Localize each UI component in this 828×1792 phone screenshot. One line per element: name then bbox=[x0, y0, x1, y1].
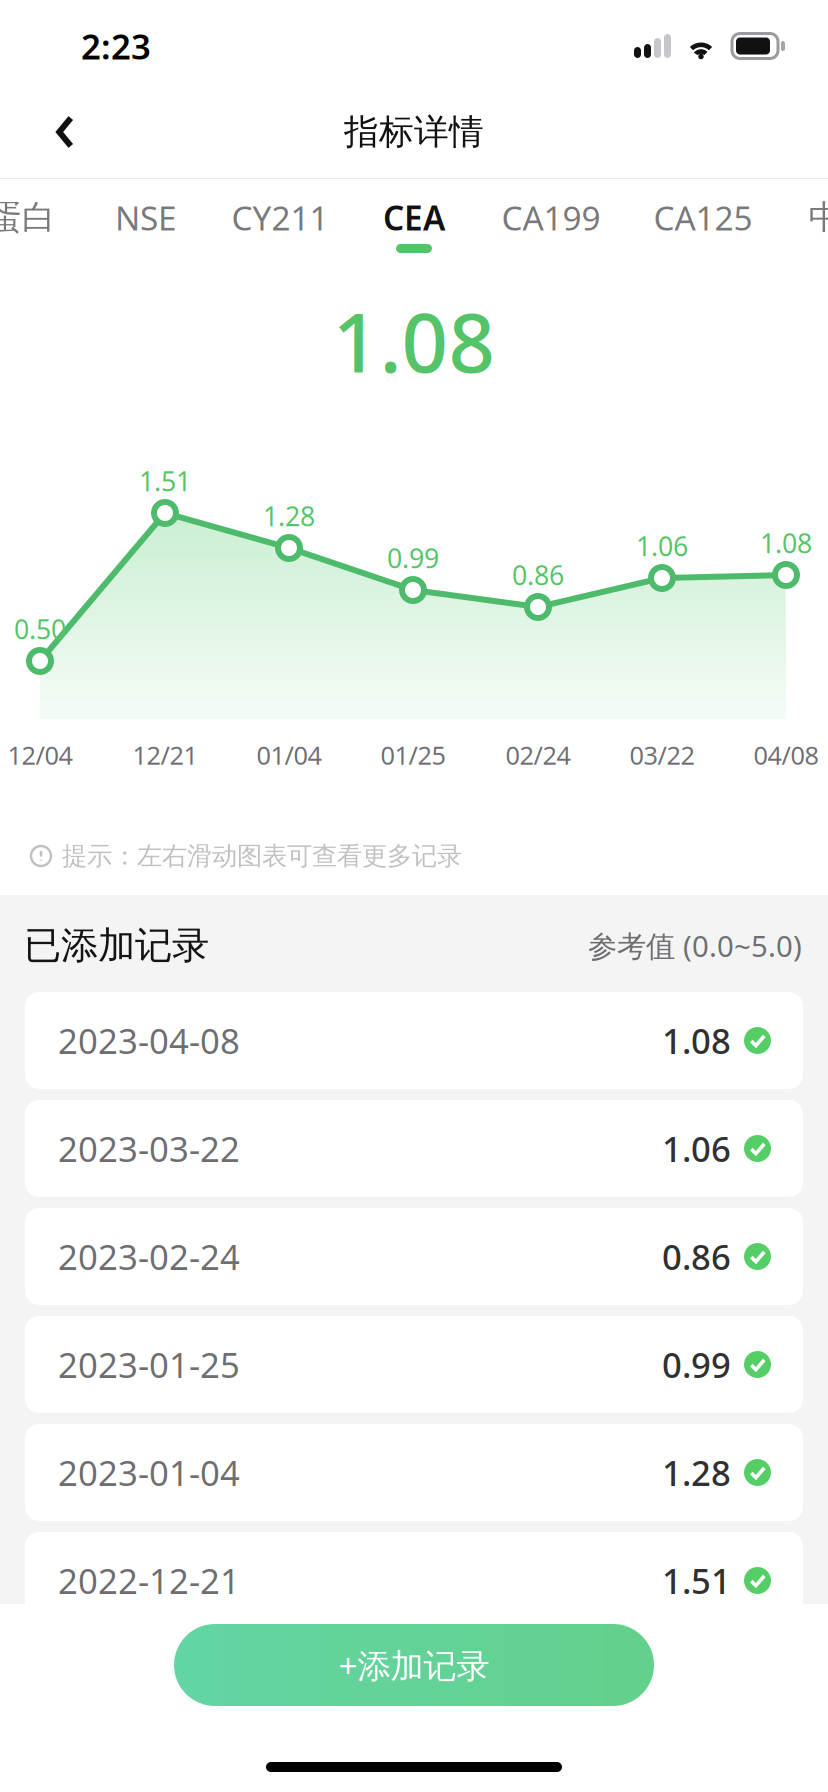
staticText: CA125 bbox=[653, 195, 752, 240]
button[interactable]: 2023-02-24 bbox=[25, 1208, 803, 1305]
staticText: 参考值 (0.0~5.0) bbox=[588, 926, 802, 965]
staticText: 2023-02-24 bbox=[58, 1233, 240, 1279]
button[interactable]: 2023-01-04 bbox=[25, 1424, 803, 1521]
button[interactable]: CA125 bbox=[603, 179, 803, 279]
staticText: 1.08 bbox=[662, 1017, 731, 1063]
staticText: 1.28 bbox=[662, 1449, 731, 1495]
button[interactable]: 2023-01-25 bbox=[25, 1316, 803, 1413]
staticText: 04/08 bbox=[753, 738, 818, 772]
staticText: 1.08 bbox=[760, 525, 812, 561]
staticText: 01/25 bbox=[380, 738, 445, 772]
staticText: 2023-03-22 bbox=[58, 1125, 240, 1171]
staticText: 已添加记录 bbox=[24, 923, 209, 968]
staticText: 12/04 bbox=[7, 738, 72, 772]
staticText: 提示：左右滑动图表可查看更多记录 bbox=[62, 840, 462, 871]
staticText: 1.51 bbox=[139, 463, 191, 499]
button[interactable]: 2022-12-21 bbox=[25, 1532, 803, 1629]
staticText: 1.08 bbox=[332, 287, 495, 395]
staticText: 1.28 bbox=[263, 498, 315, 534]
staticText: 蛋白 bbox=[0, 197, 55, 238]
staticText: 1.06 bbox=[636, 528, 688, 564]
staticText: 1.51 bbox=[662, 1557, 731, 1603]
staticText: 2:23 bbox=[81, 23, 151, 69]
staticText: 03/22 bbox=[629, 738, 694, 772]
staticText: 0.99 bbox=[387, 540, 439, 576]
button[interactable]: CY211 bbox=[180, 179, 380, 279]
staticText: 0.99 bbox=[662, 1341, 731, 1387]
staticText: CEA bbox=[383, 195, 445, 240]
staticText: 2023-01-25 bbox=[58, 1341, 240, 1387]
staticText: 0.50 bbox=[14, 611, 66, 647]
staticText: NSE bbox=[115, 195, 177, 240]
button[interactable]: 2023-03-22 bbox=[25, 1100, 803, 1197]
staticText: 中 bbox=[808, 197, 828, 238]
staticText: CY211 bbox=[231, 195, 328, 240]
button[interactable]: 蛋白 bbox=[0, 179, 122, 279]
staticText: 2023-01-04 bbox=[58, 1449, 240, 1495]
button[interactable]: CA199 bbox=[451, 179, 651, 279]
button[interactable]: 中 bbox=[725, 179, 828, 279]
staticText: 2022-12-21 bbox=[58, 1557, 240, 1603]
staticText: +添加记录 bbox=[338, 1643, 489, 1687]
button[interactable]: CEA bbox=[314, 179, 514, 279]
button[interactable]: 2023-04-08 bbox=[25, 992, 803, 1089]
staticText: 02/24 bbox=[505, 738, 570, 772]
button[interactable]: 返回 bbox=[0, 92, 117, 177]
staticText: 指标详情 bbox=[344, 111, 484, 153]
staticText: 2023-04-08 bbox=[58, 1017, 240, 1063]
button[interactable]: NSE bbox=[46, 179, 246, 279]
staticText: 0.86 bbox=[662, 1233, 731, 1279]
staticText: CA199 bbox=[501, 195, 600, 240]
staticText: 1.06 bbox=[662, 1125, 731, 1171]
staticText: 12/21 bbox=[132, 738, 197, 772]
button[interactable]: +添加记录 bbox=[174, 1624, 654, 1706]
staticText: 0.86 bbox=[512, 557, 564, 593]
staticText: 01/04 bbox=[256, 738, 321, 772]
